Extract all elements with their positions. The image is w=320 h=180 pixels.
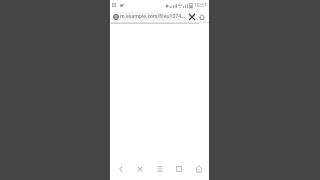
other: Site info xyxy=(113,14,119,20)
button[interactable]: Home xyxy=(190,158,208,180)
button[interactable]: Close xyxy=(131,158,149,180)
button[interactable]: Menu xyxy=(151,158,169,180)
staticText: 10:51 xyxy=(194,2,207,9)
staticText: m.example.com/fileu1074541 xyxy=(120,13,185,20)
button[interactable]: Home xyxy=(197,12,207,22)
button[interactable]: Recents xyxy=(170,158,188,180)
button[interactable]: Back xyxy=(112,158,130,180)
button[interactable]: Site info xyxy=(112,12,186,21)
button[interactable]: Stop loading xyxy=(187,12,197,22)
